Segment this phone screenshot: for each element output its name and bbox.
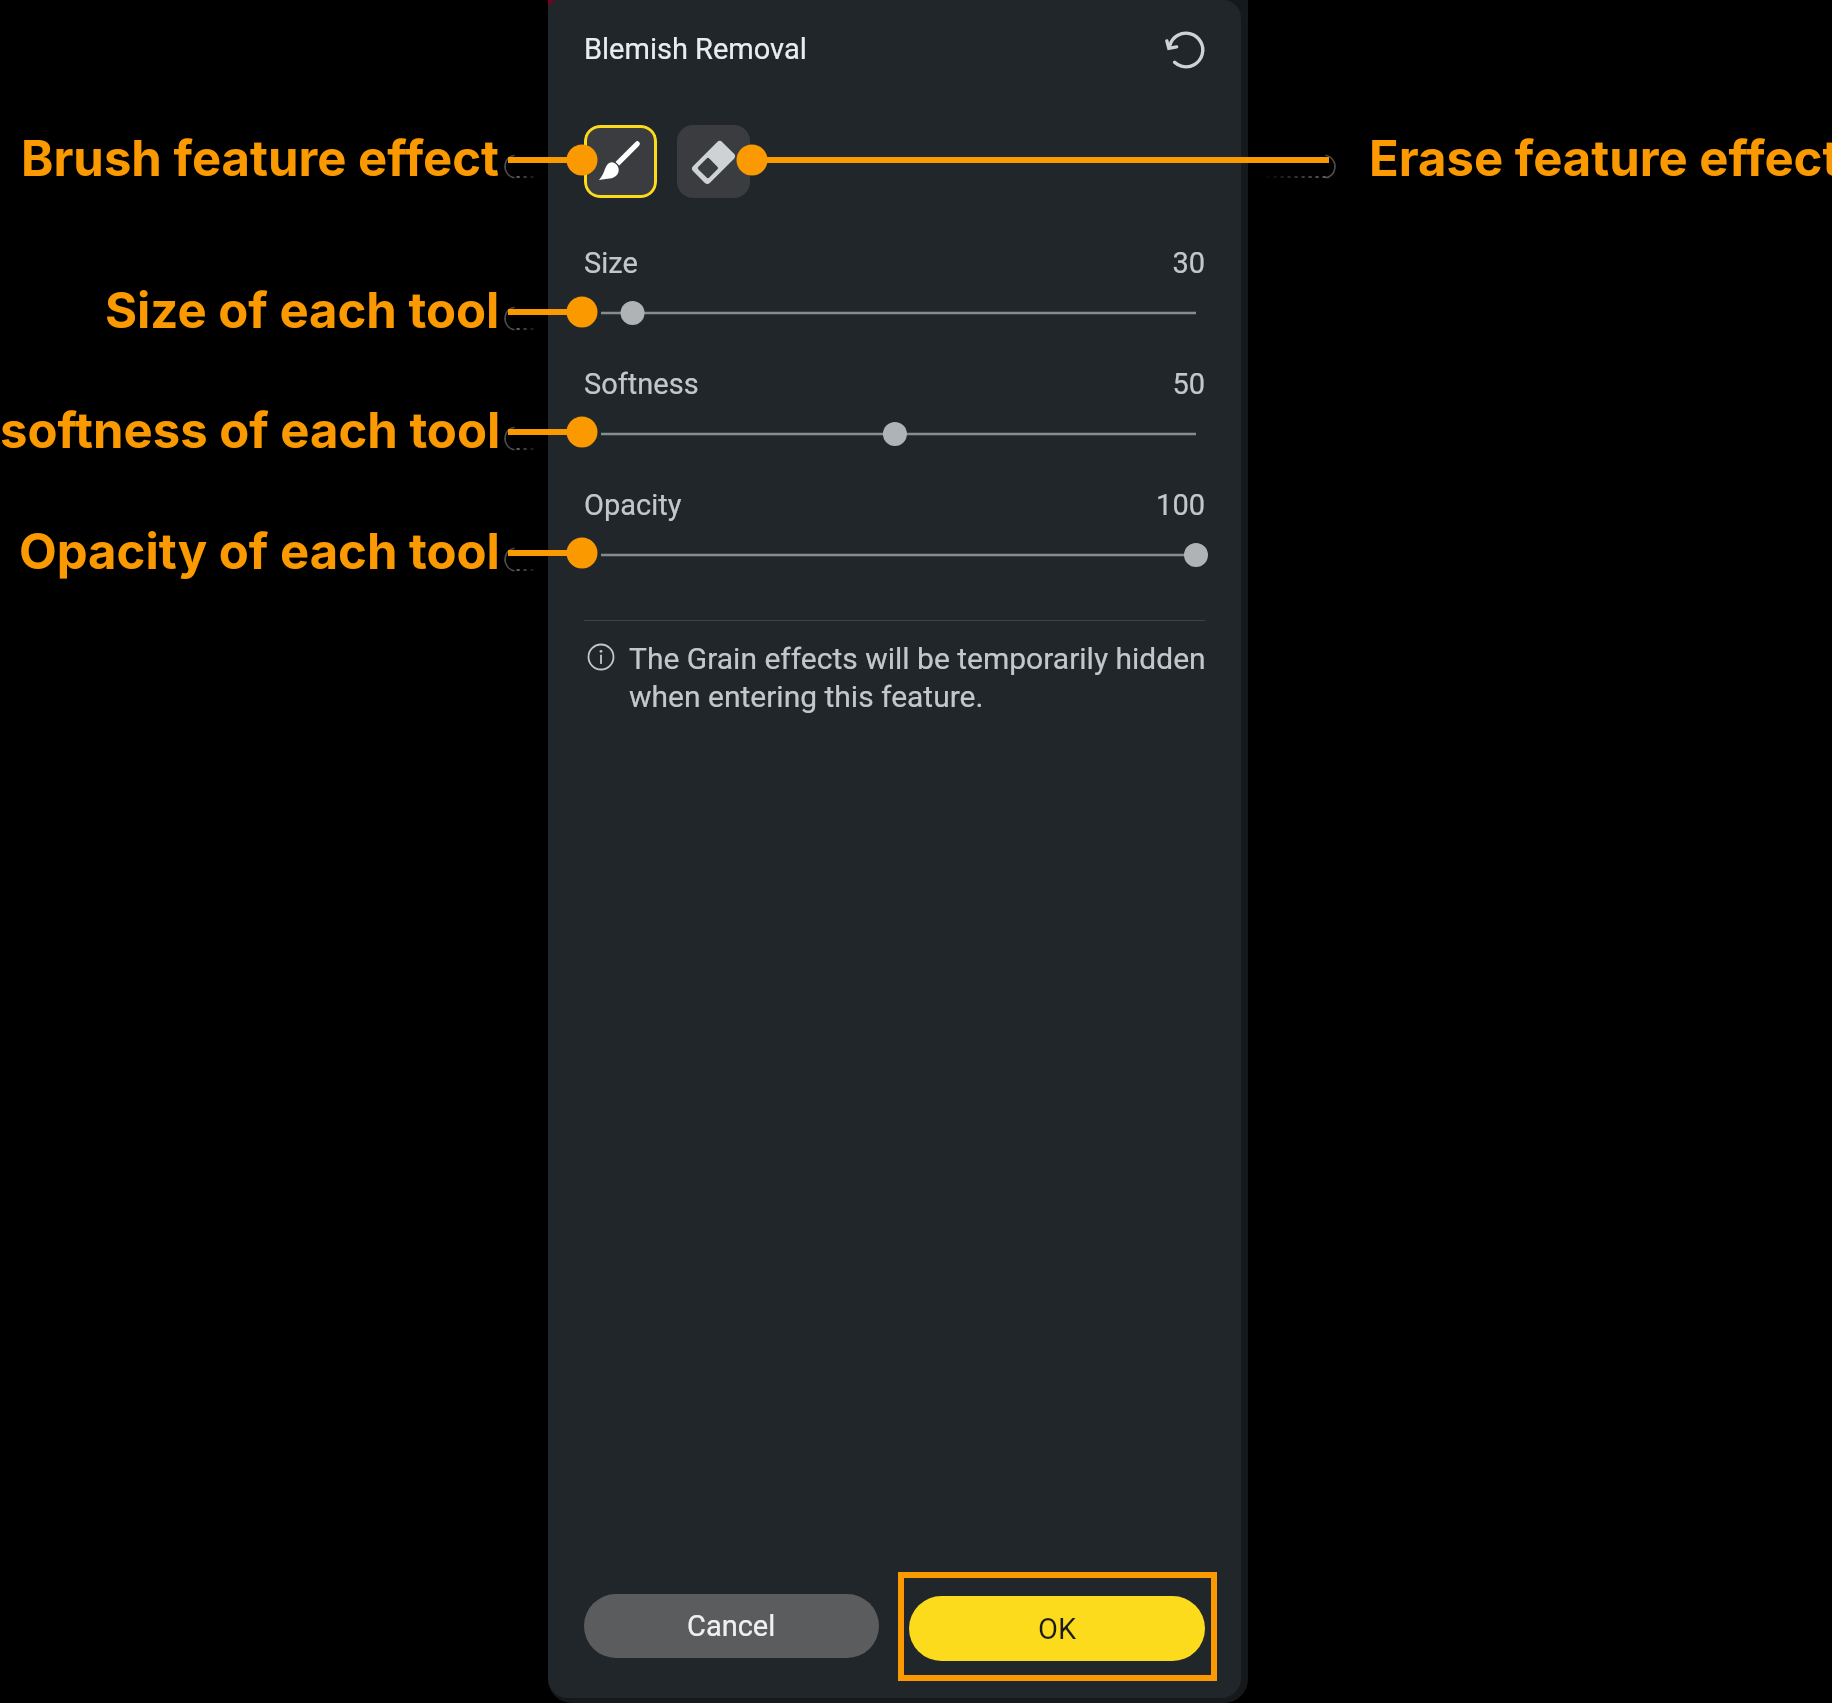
- button[interactable]: Erase tool: [677, 125, 750, 198]
- staticText: The Grain effects will be temporarily hi…: [629, 641, 1229, 714]
- staticText: Erase feature effect: [1369, 129, 1832, 188]
- staticText: softness of each tool: [0, 401, 500, 460]
- button[interactable]: Size slider: [585, 296, 1212, 330]
- staticText: Opacity: [584, 488, 682, 522]
- staticText: 30: [584, 246, 1205, 280]
- staticText: Blemish Removal: [584, 32, 807, 66]
- staticText: Size of each tool: [105, 281, 500, 340]
- button[interactable]: Cancel: [584, 1594, 879, 1658]
- button[interactable]: OK: [909, 1596, 1205, 1661]
- staticText: Cancel: [687, 1609, 776, 1643]
- staticText: Opacity of each tool: [19, 522, 500, 581]
- staticText: Brush feature effect: [21, 129, 500, 188]
- button[interactable]: Brush tool: [584, 125, 657, 198]
- staticText: 100: [584, 488, 1205, 522]
- staticText: Softness: [584, 367, 699, 401]
- button[interactable]: Opacity slider: [585, 538, 1212, 572]
- staticText: OK: [1038, 1612, 1077, 1646]
- button[interactable]: Reset: [1160, 24, 1212, 76]
- staticText: 50: [584, 367, 1205, 401]
- staticText: Size: [584, 246, 638, 280]
- button[interactable]: Softness slider: [585, 417, 1212, 451]
